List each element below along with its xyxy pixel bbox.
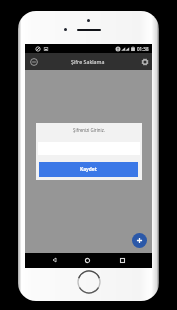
- button[interactable]: Home: [81, 254, 93, 266]
- button[interactable]: Settings: [138, 55, 152, 69]
- button[interactable]: Back: [48, 254, 60, 266]
- staticText: Şifre Saklama: [71, 58, 105, 65]
- staticText: Şifrenizi Giriniz.: [36, 127, 142, 133]
- staticText: Kaydet: [80, 166, 97, 173]
- button[interactable]: Add: [132, 233, 147, 248]
- button[interactable]: Kaydet: [39, 162, 138, 177]
- button[interactable]: Recents: [116, 254, 128, 266]
- button[interactable]: Hide passwords: [27, 55, 41, 69]
- staticText: 01:38: [137, 46, 149, 52]
